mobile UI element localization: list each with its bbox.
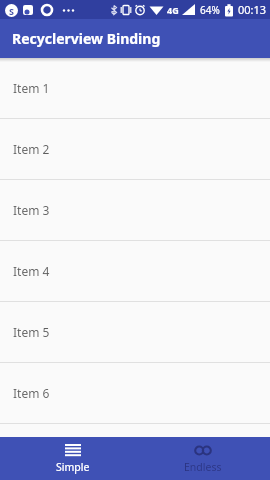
staticText: Item 6 bbox=[13, 385, 50, 401]
staticText: 00:13 bbox=[238, 2, 267, 17]
staticText: Recyclerview Binding bbox=[12, 29, 161, 48]
button[interactable]: Item 4 bbox=[0, 241, 270, 302]
staticText: Item 2 bbox=[13, 141, 50, 157]
button[interactable]: Item 3 bbox=[0, 180, 270, 241]
staticText: Endless bbox=[184, 460, 222, 474]
staticText: 4G bbox=[167, 4, 179, 16]
staticText: Item 3 bbox=[13, 202, 50, 218]
staticText: Simple bbox=[56, 460, 90, 474]
staticText: S bbox=[9, 5, 14, 17]
staticText: Item 5 bbox=[13, 324, 50, 340]
staticText: 64% bbox=[200, 3, 220, 17]
button[interactable]: Item 6 bbox=[0, 363, 270, 424]
staticText: Item 1 bbox=[13, 80, 50, 96]
button[interactable]: Endless bbox=[140, 437, 265, 480]
staticText: Item 4 bbox=[13, 263, 50, 279]
button[interactable]: Item 1 bbox=[0, 58, 270, 119]
button[interactable]: Item 5 bbox=[0, 302, 270, 363]
button[interactable]: Simple bbox=[5, 437, 140, 480]
button[interactable]: Item 2 bbox=[0, 119, 270, 180]
